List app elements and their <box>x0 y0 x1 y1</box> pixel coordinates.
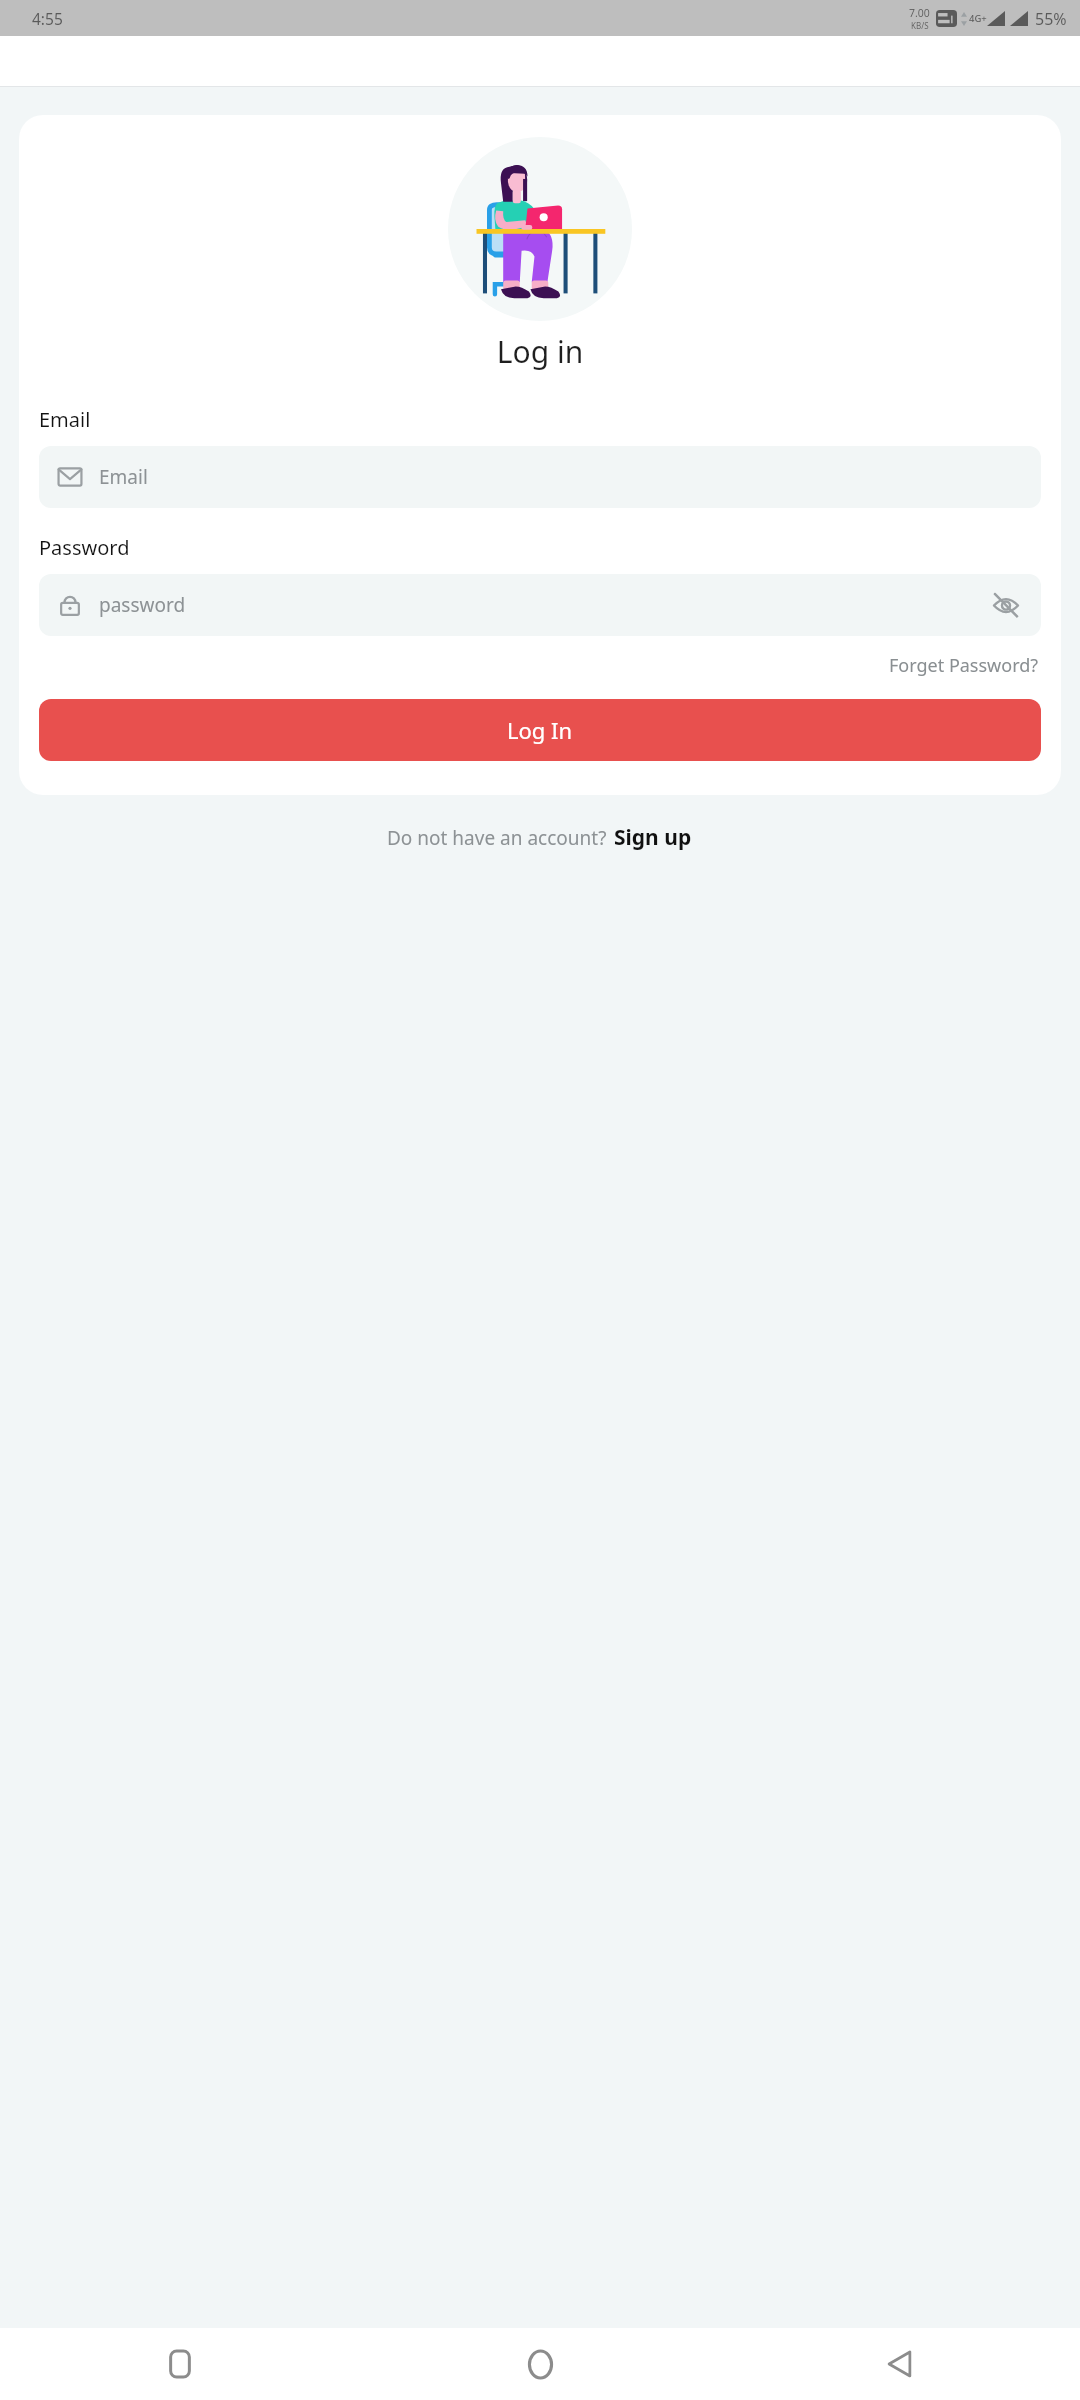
staticText: 7.00 <box>909 6 930 20</box>
staticText: 4:55 <box>32 8 63 29</box>
staticText: 4G+ <box>969 12 987 25</box>
button[interactable]: Log In <box>39 699 1041 761</box>
button[interactable]: password <box>39 574 1041 636</box>
staticText: Log in <box>39 331 1041 372</box>
button[interactable]: Forget Password? <box>887 650 1041 681</box>
staticText: Forget Password? <box>889 653 1039 678</box>
staticText: Do not have an account? <box>387 825 612 851</box>
button[interactable]: Recents <box>149 2333 211 2395</box>
button[interactable]: Sign up <box>612 821 694 854</box>
staticText: Password <box>39 534 130 561</box>
button[interactable]: Home <box>509 2333 571 2395</box>
staticText: Email <box>99 464 1023 490</box>
staticText: password <box>99 592 989 618</box>
button[interactable]: Email <box>39 446 1041 508</box>
button[interactable]: Show password <box>989 588 1023 622</box>
staticText: Sign up <box>614 823 692 852</box>
staticText: KB/S <box>911 20 929 31</box>
staticText: Log In <box>507 715 573 745</box>
staticText: 55% <box>1035 8 1067 30</box>
button[interactable]: Back <box>869 2333 931 2395</box>
staticText: Email <box>39 406 91 433</box>
